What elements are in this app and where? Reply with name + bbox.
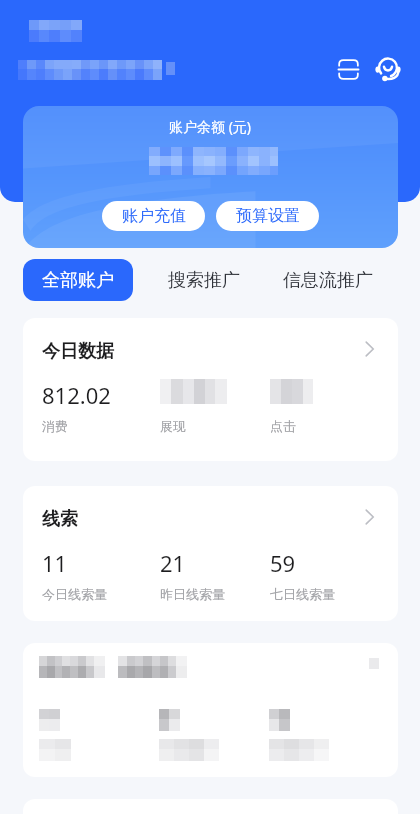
staticText: 812.02 <box>42 380 111 410</box>
button[interactable] <box>23 643 398 777</box>
button[interactable]: 信息流推广 <box>272 261 384 299</box>
staticText: 搜索推广 <box>168 269 240 292</box>
staticText: 全部账户 <box>42 269 114 292</box>
button[interactable]: 今日数据 <box>23 318 398 461</box>
staticText: 今日线索量 <box>42 586 107 602</box>
staticText: 消费 <box>42 418 68 434</box>
staticText: 21 <box>160 548 186 578</box>
staticText: 展现 <box>160 418 186 434</box>
staticText: 预算设置 <box>236 206 300 226</box>
button[interactable]: Switch account <box>332 53 364 85</box>
staticText: 59 <box>270 548 296 578</box>
button[interactable]: 全部账户 <box>23 259 133 301</box>
button[interactable]: 预算设置 <box>216 201 319 231</box>
staticText: 11 <box>42 548 68 578</box>
staticText: 信息流推广 <box>283 269 373 292</box>
button[interactable]: 搜索推广 <box>157 261 251 299</box>
button[interactable]: 线索 <box>23 486 398 621</box>
staticText: 账户余额 (元) <box>169 117 252 136</box>
staticText: 七日线索量 <box>270 586 335 602</box>
staticText: 账户充值 <box>122 206 186 226</box>
staticText: 线索 <box>42 508 78 531</box>
staticText: 昨日线索量 <box>160 586 225 602</box>
button[interactable]: 账户充值 <box>102 201 205 231</box>
staticText: 点击 <box>270 418 296 434</box>
button[interactable]: Customer service <box>372 53 404 85</box>
staticText: 今日数据 <box>42 340 114 363</box>
